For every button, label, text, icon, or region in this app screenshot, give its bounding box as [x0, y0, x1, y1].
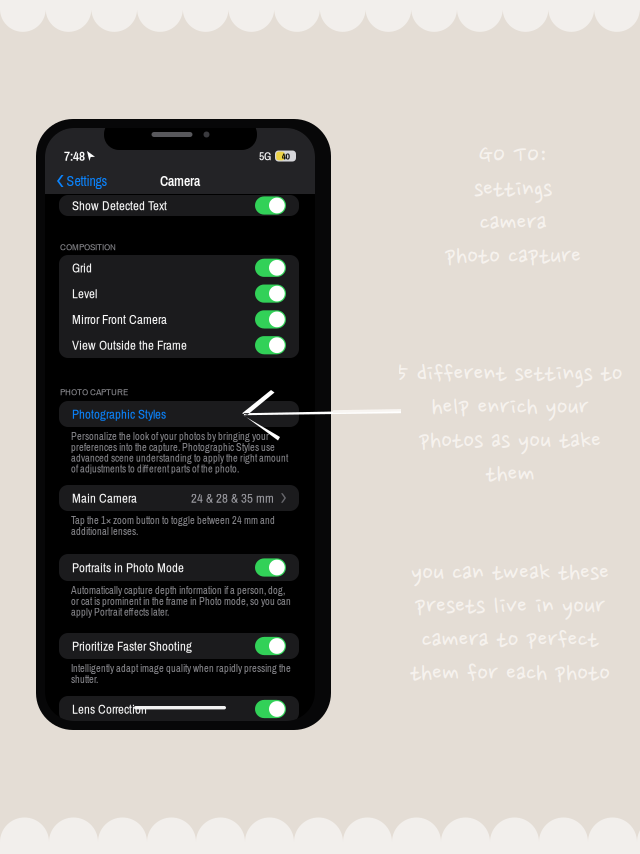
staticText: Settings — [66, 172, 107, 190]
button[interactable]: Main Camera — [59, 485, 299, 511]
button[interactable]: Photographic Styles — [59, 401, 299, 427]
staticText: COMPOSITION — [60, 240, 116, 253]
staticText: you can tweak these — [411, 560, 609, 587]
staticText: Tap the 1× zoom button to toggle between… — [71, 515, 275, 537]
staticText: presets live in your — [415, 593, 605, 621]
staticText: Mirror Front Camera — [72, 311, 167, 328]
button[interactable]: Level — [59, 281, 299, 306]
staticText: PHOTO CAPTURE — [60, 385, 128, 398]
button[interactable]: Grid — [59, 255, 299, 281]
staticText: Camera — [160, 172, 200, 190]
staticText: Intelligently adapt image quality when r… — [71, 663, 291, 685]
staticText: help enrich your — [431, 394, 588, 422]
button[interactable]: Settings — [55, 168, 109, 194]
staticText: camera to perfect — [421, 627, 598, 654]
button[interactable]: Show Detected Text — [59, 195, 299, 216]
button[interactable]: Mirror Front Camera — [59, 306, 299, 332]
staticText: Prioritize Faster Shooting — [72, 637, 192, 655]
staticText: GO TO: — [479, 143, 547, 170]
button[interactable]: View Outside the Frame — [59, 332, 299, 358]
button[interactable]: Prioritize Faster Shooting — [59, 633, 299, 659]
staticText: settings — [474, 176, 552, 204]
staticText: Lens Correction — [72, 700, 147, 718]
button[interactable]: Lens Correction — [59, 696, 299, 722]
staticText: camera — [479, 210, 546, 237]
staticText: View Outside the Frame — [72, 337, 187, 354]
staticText: Main Camera — [72, 489, 137, 507]
staticText: photos as you take — [419, 428, 601, 455]
staticText: 24 & 28 & 35 mm — [191, 489, 274, 507]
staticText: 5G — [259, 148, 271, 164]
staticText: 7:48 — [64, 147, 85, 165]
staticText: Show Detected Text — [72, 197, 167, 214]
button[interactable]: Portraits in Photo Mode — [59, 554, 299, 581]
staticText: photo capture — [445, 243, 581, 271]
staticText: them for each photo — [410, 660, 610, 688]
staticText: them — [485, 461, 534, 489]
staticText: Photographic Styles — [72, 405, 166, 423]
staticText: Personalize the look of your photos by b… — [71, 431, 288, 474]
staticText: 5 different settings to — [397, 361, 622, 388]
staticText: Grid — [72, 259, 92, 276]
staticText: Level — [72, 285, 97, 302]
staticText: Portraits in Photo Mode — [72, 559, 184, 576]
staticText: Automatically capture depth information … — [71, 585, 291, 617]
staticText: 40 — [281, 149, 289, 163]
